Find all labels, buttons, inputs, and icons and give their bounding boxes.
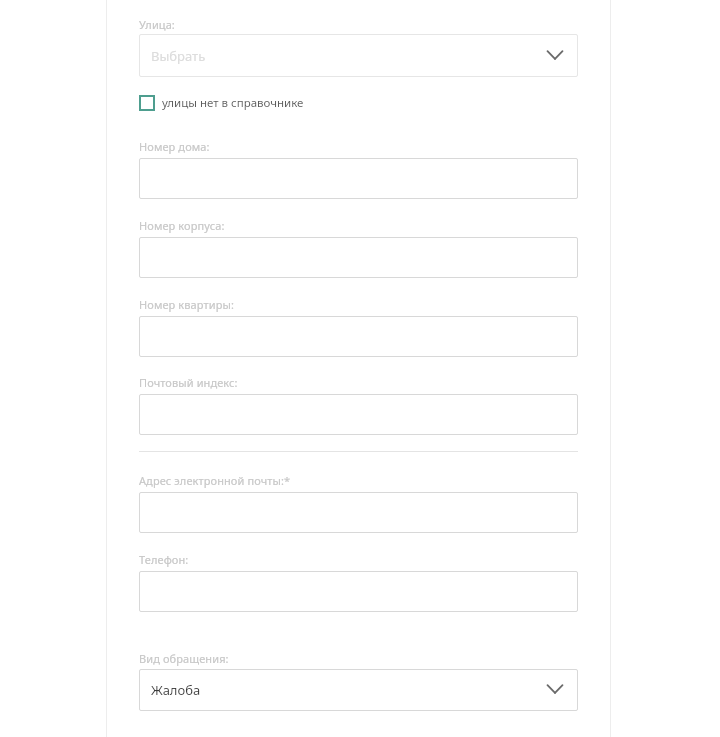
button[interactable] (139, 394, 578, 435)
button[interactable] (139, 492, 578, 533)
staticText: Адрес электронной почты:* (139, 473, 291, 488)
staticText: Почтовый индекс: (139, 375, 238, 390)
button[interactable] (139, 237, 578, 278)
staticText: Жалоба (151, 681, 201, 699)
button[interactable]: Вид обращения, Жалоба (139, 669, 578, 711)
staticText: Выбрать (151, 47, 206, 65)
staticText: Вид обращения: (139, 651, 229, 666)
staticText: Номер дома: (139, 139, 210, 154)
staticText: Улица: (139, 17, 175, 32)
button[interactable] (139, 316, 578, 357)
staticText: улицы нет в справочнике (162, 95, 304, 111)
staticText: Телефон: (139, 552, 189, 567)
button[interactable] (139, 571, 578, 612)
staticText: Номер корпуса: (139, 218, 225, 233)
button[interactable]: улицы нет в справочнике (139, 93, 304, 112)
button[interactable]: Улица, выбрать (139, 34, 578, 77)
staticText: Номер квартиры: (139, 297, 234, 312)
button[interactable] (139, 158, 578, 199)
